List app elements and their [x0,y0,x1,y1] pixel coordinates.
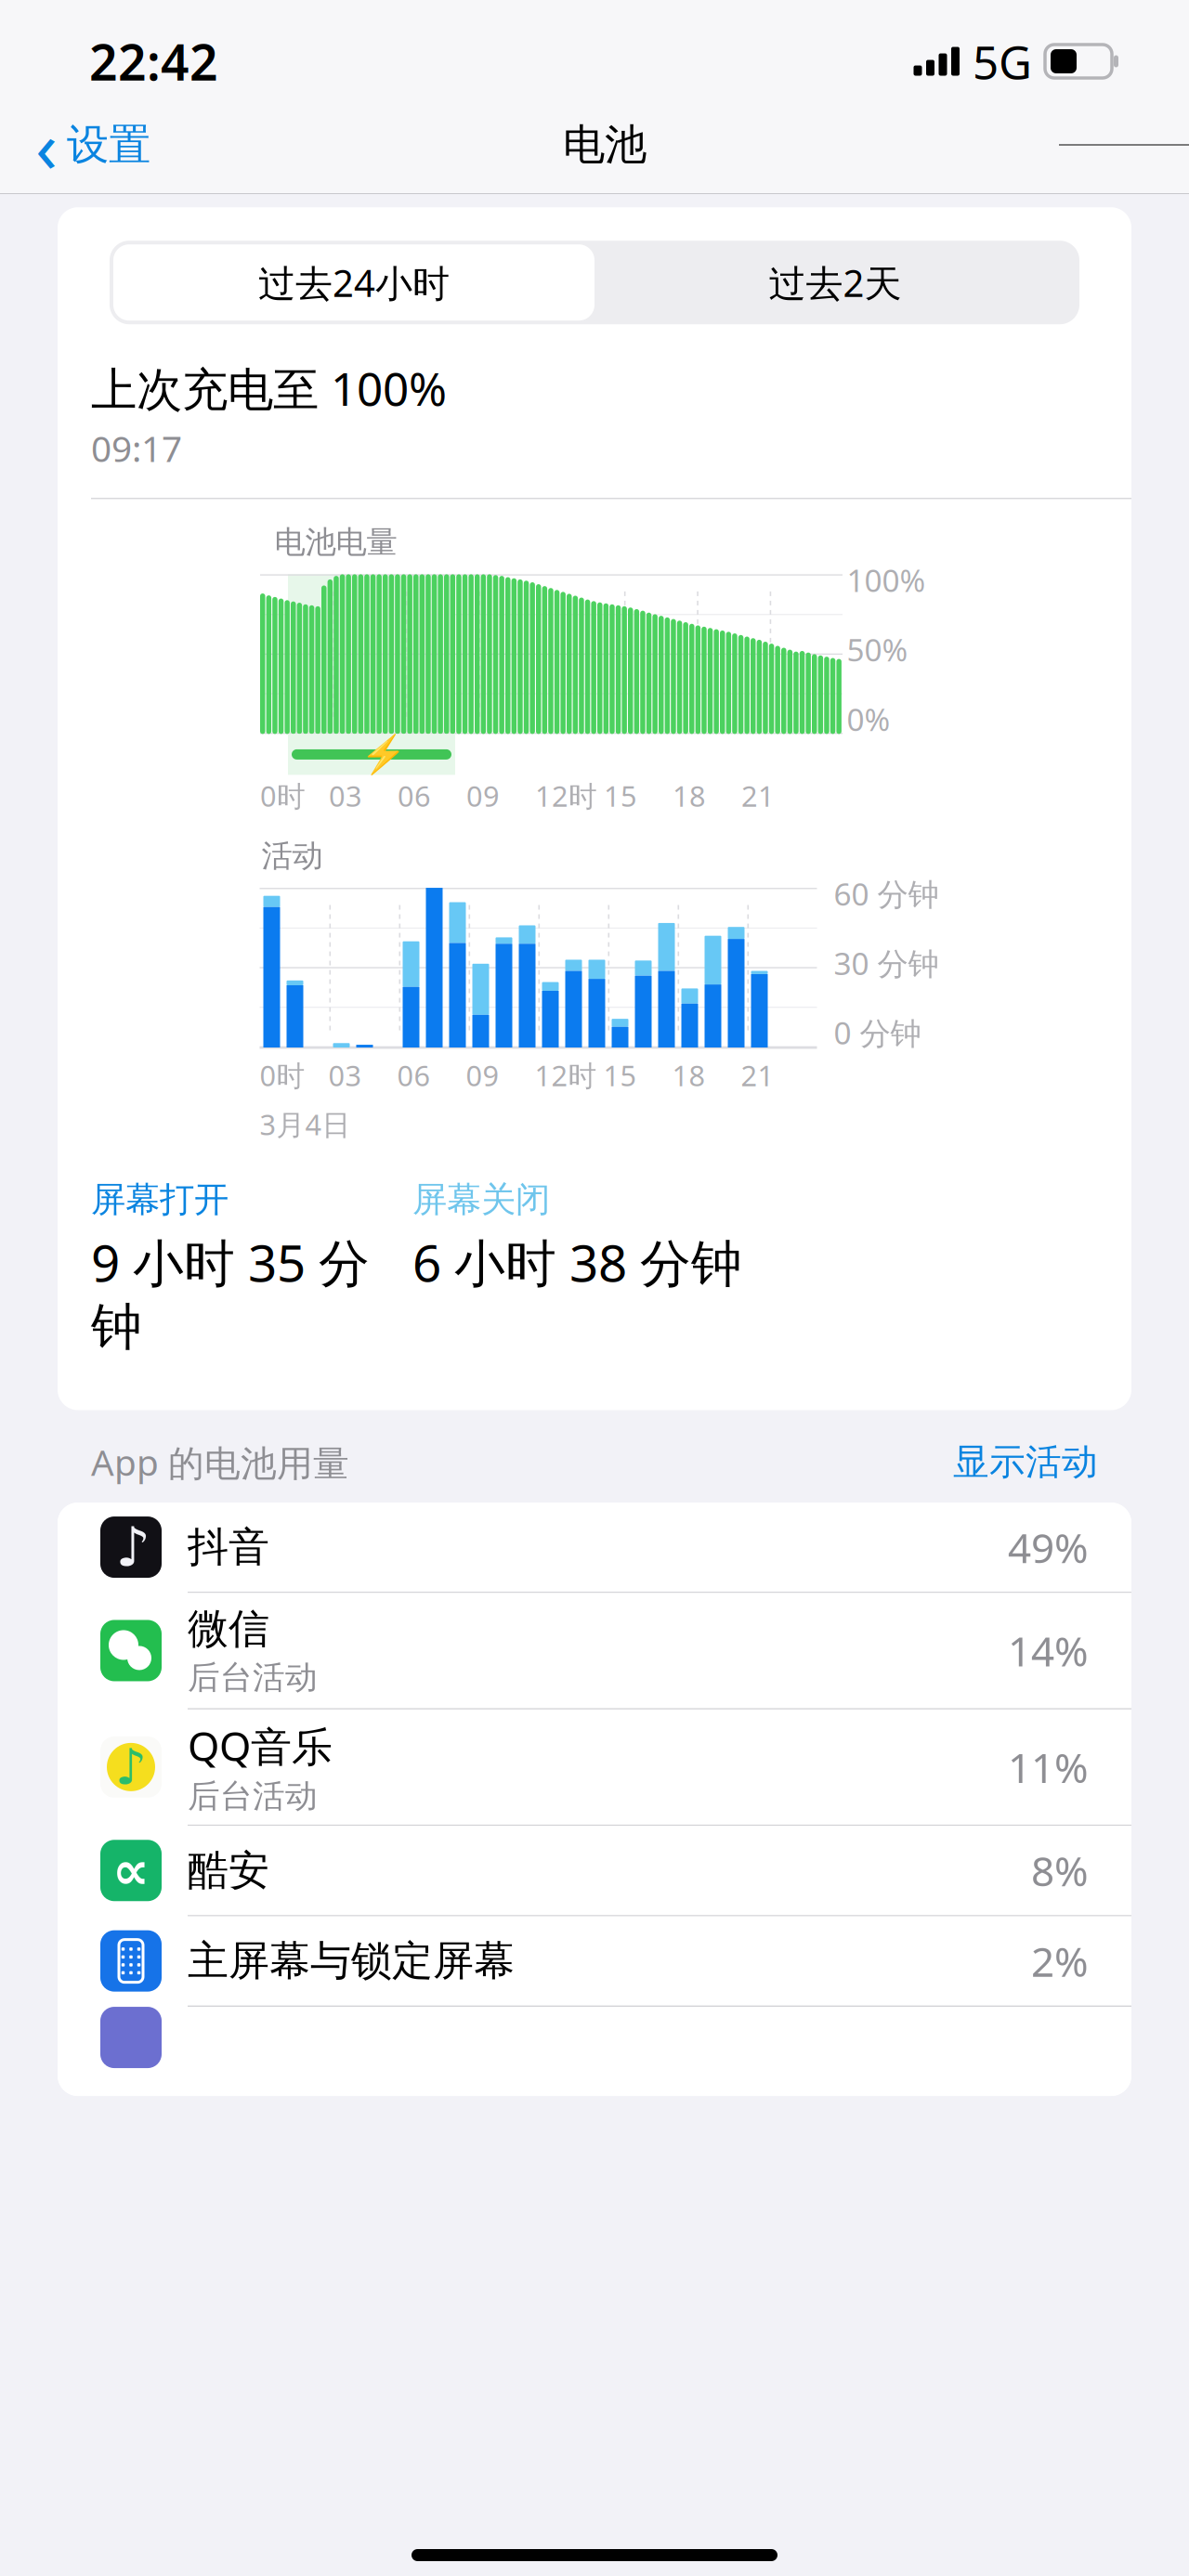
staticText: 18 [673,777,706,814]
staticText: 后台活动 [188,1658,318,1697]
button[interactable]: ♪ [58,1710,1131,1826]
staticText: 12时 [535,777,597,814]
staticText: 微信 [188,1604,269,1654]
button[interactable]: 过去24小时 [113,244,594,321]
staticText: 14% [1008,1623,1089,1678]
button[interactable] [58,2007,1131,2096]
staticText: 21 [741,1056,774,1094]
staticText: 0% [847,698,890,740]
button[interactable]: 过去2天 [594,244,1076,321]
staticText: 后台活动 [188,1776,318,1816]
button[interactable]: ♪ [58,1503,1131,1593]
staticText: 电池 [563,119,647,171]
staticText: ‹ [35,97,58,193]
staticText: 电池电量 [274,523,397,561]
staticText: 12时 [535,1056,597,1094]
staticText: 8% [1031,1843,1089,1898]
staticText: 15 [603,1056,637,1094]
staticText: 0时 [260,1056,305,1094]
staticText: 6 小时 38 分钟 [412,1228,742,1296]
staticText: 06 [398,777,431,814]
staticText: 上次充电至 100% [91,358,447,419]
staticText: ⚡ [360,733,407,776]
staticText: 抖音 [188,1522,269,1572]
staticText: 过去2天 [769,258,902,307]
staticText: 0 分钟 [834,1012,921,1053]
staticText: ∝ [112,1841,150,1900]
staticText: 酷安 [188,1845,269,1896]
staticText: 60 分钟 [834,873,939,914]
staticText: 50% [847,629,908,670]
staticText: 主屏幕与锁定屏幕 [188,1936,515,1986]
staticText: 18 [672,1056,706,1094]
staticText: 03 [329,777,362,814]
staticText: 屏幕关闭 [412,1178,550,1221]
button[interactable]: 微信 [58,1593,1131,1710]
staticText: QQ音乐 [188,1718,333,1773]
staticText: 5G [973,31,1032,92]
staticText: 09 [466,1056,499,1094]
staticText: 21 [741,777,775,814]
staticText: ♪ [116,1516,150,1578]
staticText: 15 [604,777,637,814]
staticText: 屏幕打开 [91,1178,229,1221]
staticText: 过去24小时 [258,258,450,307]
button[interactable]: ∝ [58,1826,1131,1916]
staticText: 设置 [67,119,150,171]
staticText: 03 [328,1056,362,1094]
staticText: 22:42 [89,28,218,94]
button[interactable]: 显示活动 [953,1440,1098,1484]
staticText: 0时 [260,777,306,814]
button[interactable]: ‹ [0,92,150,198]
staticText: 活动 [261,837,323,875]
staticText: 2% [1031,1934,1089,1988]
staticText: 30 分钟 [834,942,939,984]
staticText: 09 [466,777,500,814]
staticText: 9 小时 35 分钟 [91,1228,370,1358]
staticText: 显示活动 [953,1440,1098,1484]
staticText: ♪ [115,1739,147,1795]
staticText: 3月4日 [260,1105,351,1143]
staticText: 09:17 [91,424,182,472]
staticText: 100% [847,559,926,601]
staticText: App 的电池用量 [91,1438,349,1486]
staticText: 06 [397,1056,431,1094]
staticText: 11% [1008,1740,1089,1794]
button[interactable]: 主屏幕与锁定屏幕 [58,1916,1131,2007]
staticText: 49% [1008,1520,1089,1574]
